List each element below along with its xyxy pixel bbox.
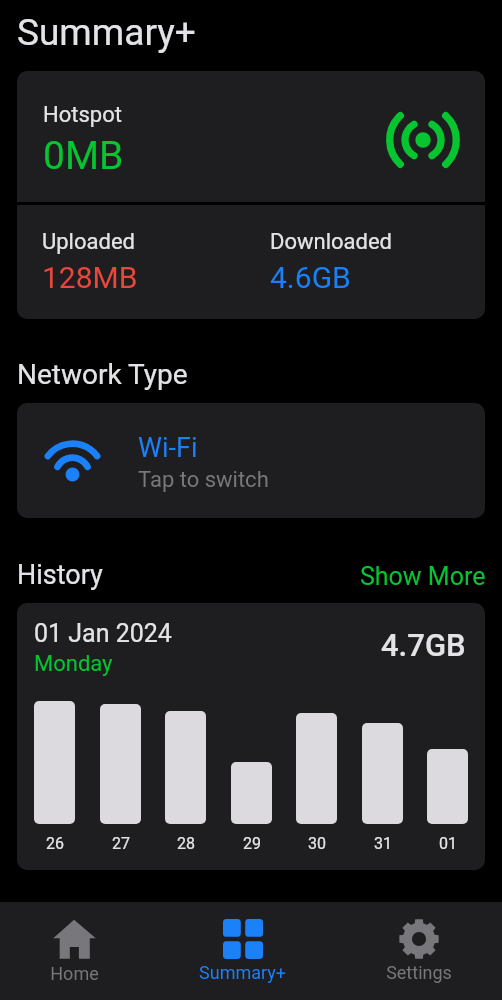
staticText: 01 Jan 2024 xyxy=(34,619,172,648)
other: Wi-Fi xyxy=(44,439,101,482)
staticText: 26 xyxy=(46,834,64,851)
other: Hotspot xyxy=(387,110,459,170)
staticText: 31 xyxy=(374,834,392,851)
staticText: Home xyxy=(50,963,99,984)
button[interactable]: Settings xyxy=(386,902,452,1000)
staticText: Uploaded xyxy=(42,229,135,255)
other: Home xyxy=(53,919,96,960)
staticText: Network Type xyxy=(17,358,188,391)
button[interactable]: Wi-Fi xyxy=(17,403,485,518)
staticText: 01 xyxy=(439,834,457,851)
staticText: Summary+ xyxy=(199,962,286,983)
staticText: 28 xyxy=(177,834,195,851)
staticText: 4.6GB xyxy=(270,260,351,295)
staticText: Downloaded xyxy=(270,229,393,255)
staticText: History xyxy=(17,559,103,591)
button[interactable]: Home xyxy=(50,902,99,1000)
staticText: 29 xyxy=(243,834,261,851)
staticText: 27 xyxy=(112,834,130,851)
button[interactable]: 01 Jan 2024 xyxy=(17,603,485,870)
button[interactable]: Show More xyxy=(360,562,486,591)
staticText: Hotspot xyxy=(43,102,122,128)
button[interactable]: Summary xyxy=(199,902,286,1000)
staticText: 4.7GB xyxy=(381,627,466,663)
staticText: Tap to switch xyxy=(138,467,269,493)
other: Summary xyxy=(223,919,263,959)
button[interactable]: Hotspot xyxy=(17,71,485,202)
staticText: Monday xyxy=(34,651,113,677)
staticText: 0MB xyxy=(43,133,124,179)
staticText: Summary+ xyxy=(17,11,196,54)
staticText: Show More xyxy=(360,562,486,591)
staticText: Settings xyxy=(386,962,452,983)
staticText: Wi-Fi xyxy=(138,432,198,464)
staticText: 128MB xyxy=(42,260,138,295)
other: Settings xyxy=(399,919,439,959)
staticText: 30 xyxy=(308,834,326,851)
button[interactable]: Uploaded xyxy=(17,205,485,319)
